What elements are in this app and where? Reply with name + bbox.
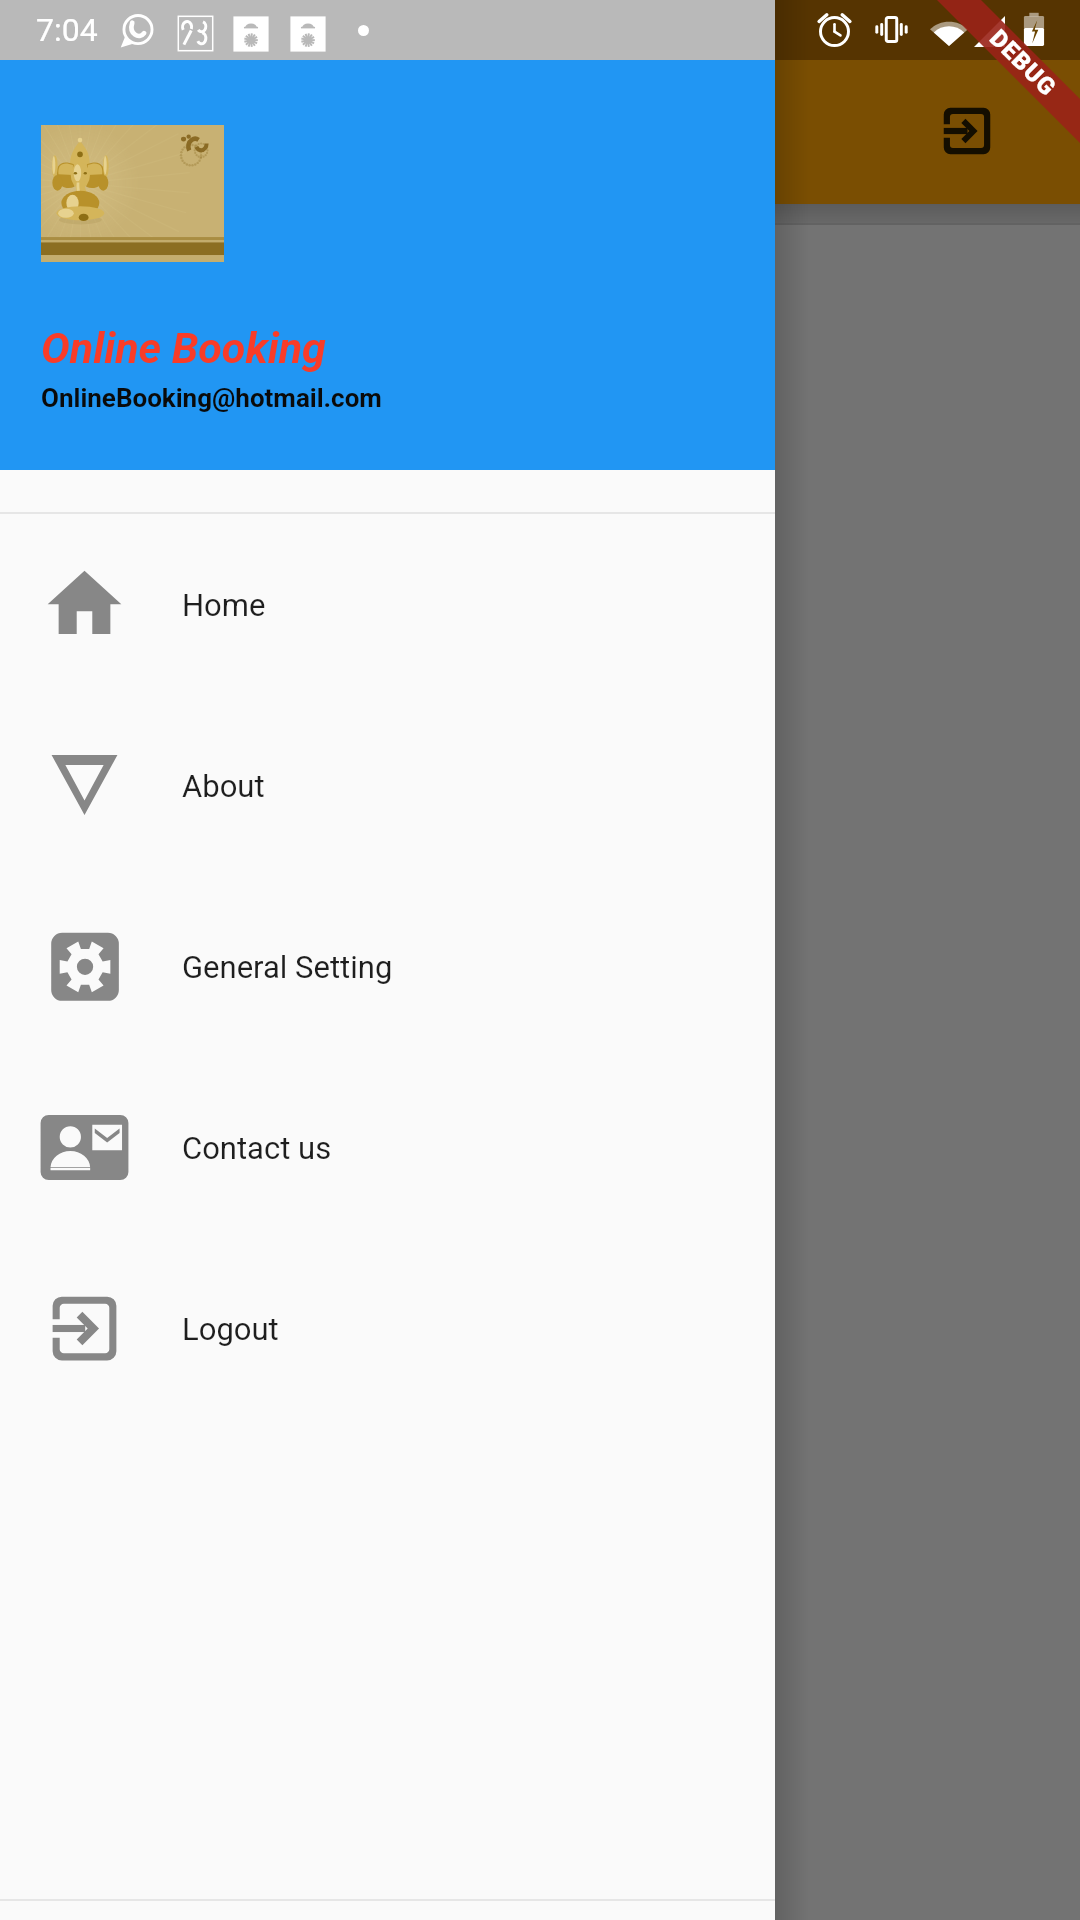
button[interactable]: Home [0,514,775,695]
button[interactable]: General Setting [0,876,775,1057]
staticText: Home [182,587,266,623]
staticText: 7:04 [36,11,98,49]
staticText: DEBUG [984,24,1062,102]
staticText: Online Booking [41,323,326,373]
staticText: About [182,768,265,804]
button[interactable]: Close navigation drawer [775,0,1080,1920]
staticText: General Setting [182,949,393,985]
staticText: OnlineBooking@hotmail.com [41,383,382,413]
button[interactable]: About [0,695,775,876]
staticText: Contact us [182,1130,332,1166]
button[interactable]: Logout [0,1238,775,1419]
staticText: Logout [182,1311,279,1347]
button[interactable]: Logout [919,83,1015,179]
button[interactable]: Contact us [0,1057,775,1238]
